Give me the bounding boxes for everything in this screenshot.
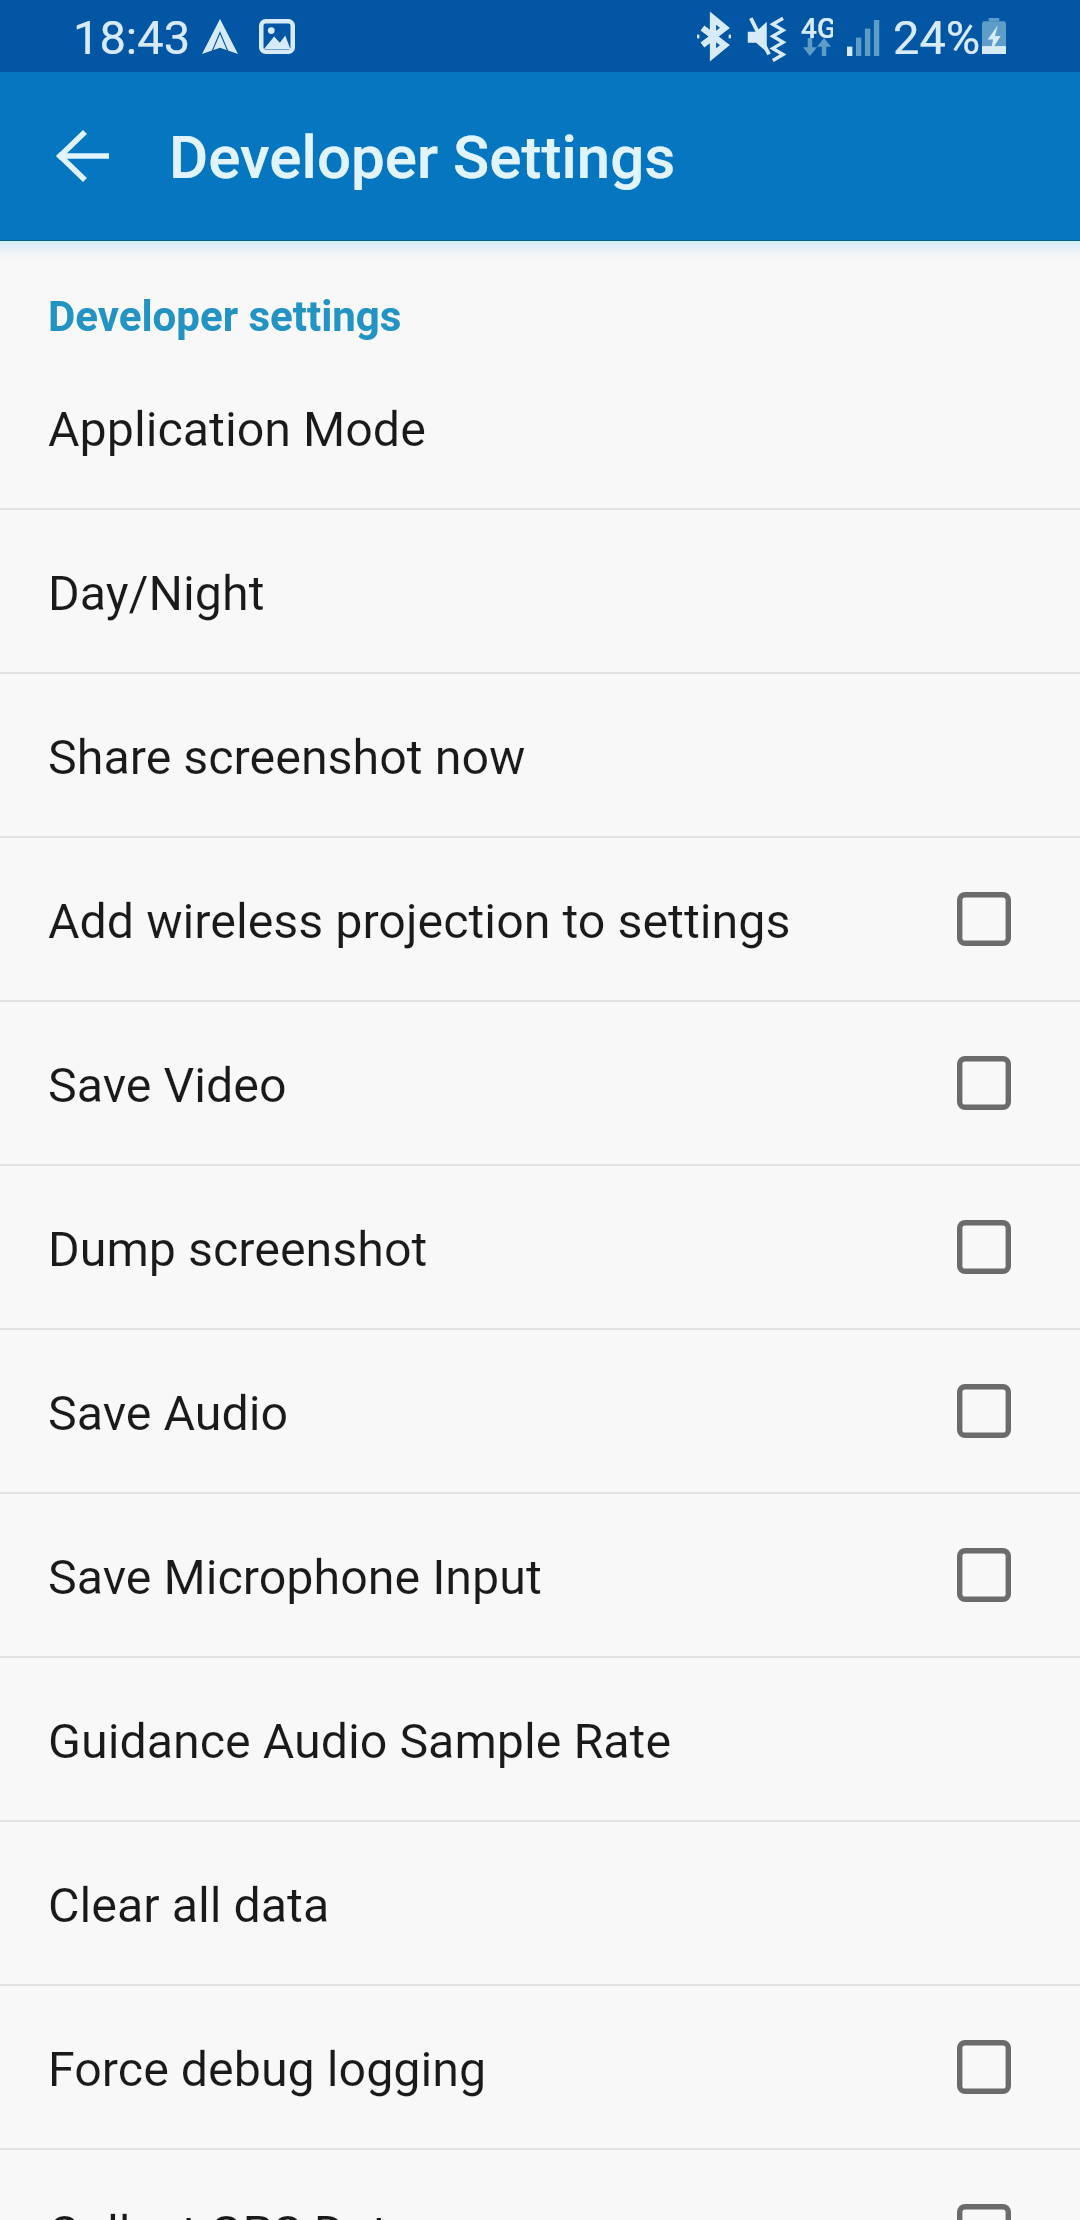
button[interactable]: Force debug logging <box>0 1986 1080 2148</box>
staticText: Developer Settings <box>169 122 676 192</box>
staticText: Force debug logging <box>48 2041 957 2098</box>
button[interactable]: Share screenshot now <box>0 674 1080 836</box>
button[interactable]: Save Audio <box>0 1330 1080 1492</box>
button[interactable]: Save Microphone Input <box>0 1494 1080 1656</box>
button[interactable]: Force debug logging checkbox <box>957 2040 1011 2094</box>
staticText: Guidance Audio Sample Rate <box>48 1713 1011 1770</box>
button[interactable]: Guidance Audio Sample Rate <box>0 1658 1080 1820</box>
staticText: Day/Night <box>48 565 1011 622</box>
button[interactable]: Save Video <box>0 1002 1080 1164</box>
staticText: 24% <box>893 10 981 65</box>
button[interactable]: Clear all data <box>0 1822 1080 1984</box>
button[interactable]: Save Microphone Input checkbox <box>957 1548 1011 1602</box>
staticText: Collect GPS Data <box>48 2205 957 2220</box>
staticText: Clear all data <box>48 1877 1011 1934</box>
button[interactable]: Dump screenshot <box>0 1166 1080 1328</box>
staticText: Save Microphone Input <box>48 1549 957 1606</box>
button[interactable]: Add wireless projection to settings chec… <box>957 892 1011 946</box>
staticText: Application Mode <box>48 401 1011 458</box>
button[interactable]: Collect GPS Data <box>0 2150 1080 2220</box>
staticText: Developer settings <box>48 292 402 341</box>
button[interactable]: Application Mode <box>0 346 1080 508</box>
button[interactable]: Collect GPS Data checkbox <box>957 2204 1011 2220</box>
staticText: Save Video <box>48 1057 957 1114</box>
staticText: Share screenshot now <box>48 729 1011 786</box>
button[interactable]: Day/Night <box>0 510 1080 672</box>
button[interactable]: Back <box>14 90 146 222</box>
staticText: Add wireless projection to settings <box>48 893 957 950</box>
staticText: Dump screenshot <box>48 1221 957 1278</box>
staticText: 4G <box>801 12 833 45</box>
staticText: Save Audio <box>48 1385 957 1442</box>
staticText: 18:43 <box>73 10 191 65</box>
button[interactable]: Save Video checkbox <box>957 1056 1011 1110</box>
button[interactable]: Dump screenshot checkbox <box>957 1220 1011 1274</box>
button[interactable]: Save Audio checkbox <box>957 1384 1011 1438</box>
button[interactable]: Add wireless projection to settings <box>0 838 1080 1000</box>
